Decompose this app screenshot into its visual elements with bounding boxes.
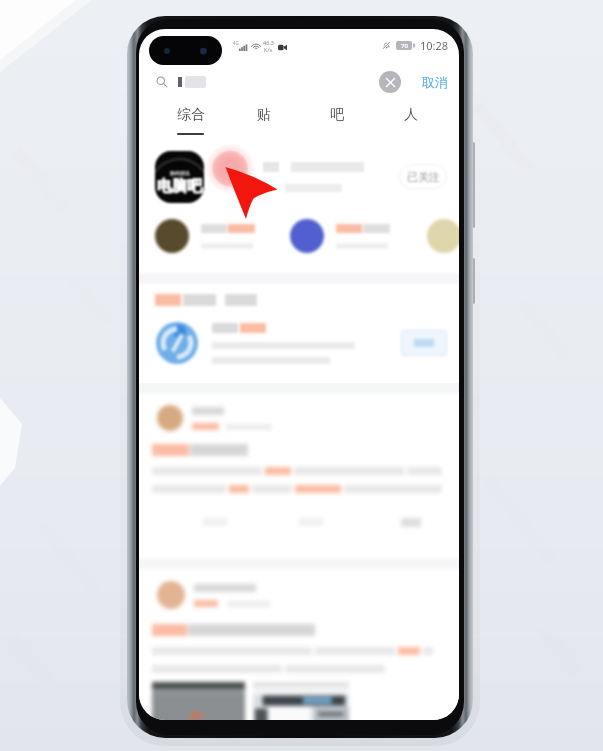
- staticText: 46.3: [263, 39, 274, 46]
- staticText: 已关注: [407, 170, 440, 184]
- staticText: 数码资讯: [170, 170, 190, 176]
- button[interactable]: [156, 322, 447, 364]
- button[interactable]: Clear search: [379, 71, 401, 93]
- button[interactable]: 吧: [300, 97, 374, 135]
- button[interactable]: 已关注: [399, 164, 447, 189]
- button[interactable]: [290, 219, 390, 253]
- staticText: 70: [401, 42, 408, 50]
- button[interactable]: [401, 330, 447, 356]
- button[interactable]: 贴: [227, 97, 300, 135]
- button[interactable]: [139, 569, 459, 720]
- button[interactable]: [401, 518, 421, 527]
- button[interactable]: [155, 219, 255, 253]
- staticText: K/s: [264, 46, 273, 53]
- button[interactable]: 综合: [154, 97, 227, 135]
- staticText: 人: [404, 106, 418, 124]
- staticText: 贴: [257, 106, 271, 124]
- staticText: 电脑吧: [157, 177, 202, 196]
- button[interactable]: [139, 394, 459, 558]
- staticText: 综合: [177, 106, 205, 124]
- staticText: 10:28: [420, 38, 449, 53]
- button[interactable]: 人: [374, 97, 448, 135]
- staticText: 4G: [233, 40, 239, 46]
- staticText: 吧: [330, 106, 344, 124]
- staticText: 取消: [422, 74, 448, 90]
- button[interactable]: 数码资讯: [139, 135, 459, 209]
- button[interactable]: 取消: [421, 70, 449, 94]
